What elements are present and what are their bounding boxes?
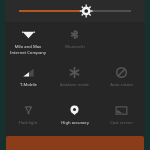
button[interactable]: Wi-Fi — [5, 23, 51, 61]
staticText: Flashlight — [18, 120, 38, 126]
staticText: Auto-rotate — [110, 82, 133, 88]
staticText: Cast screen — [110, 120, 133, 126]
button[interactable]: Bluetooth — [51, 23, 98, 61]
button[interactable]: Location — [51, 99, 98, 136]
button[interactable]: Cast screen — [98, 99, 145, 136]
button[interactable]: Brightness — [5, 0, 145, 22]
staticText: Milo and Max Internet Company — [7, 44, 49, 55]
staticText: Airplane mode — [60, 82, 89, 88]
button[interactable]: Flashlight — [5, 99, 51, 136]
button[interactable]: Airplane mode — [51, 61, 98, 99]
button[interactable]: Auto-rotate — [98, 61, 145, 99]
staticText: T-Mobile — [20, 82, 37, 88]
button[interactable]: Mobile data — [5, 61, 51, 99]
staticText: Bluetooth — [65, 44, 85, 50]
staticText: High accuracy — [61, 120, 89, 126]
